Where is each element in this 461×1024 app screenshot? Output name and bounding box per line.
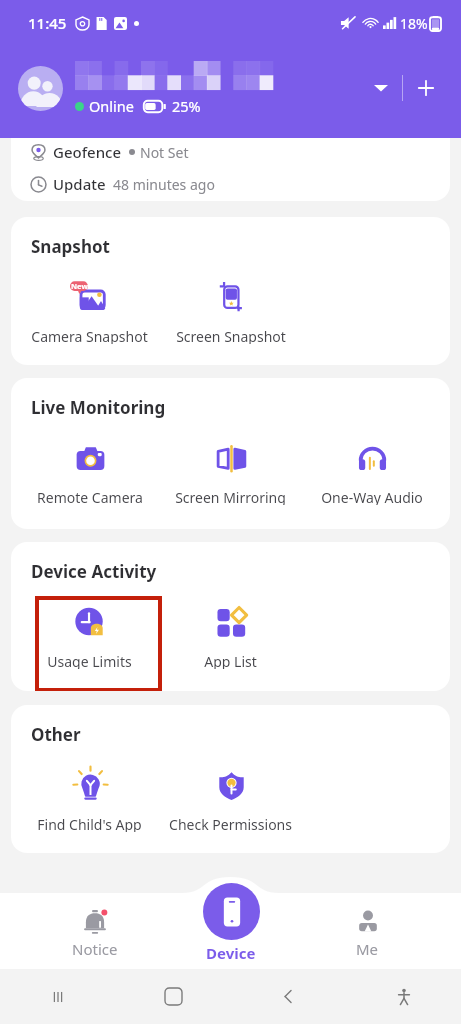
staticText: 11:45 — [28, 13, 67, 33]
staticText: Update — [53, 174, 106, 194]
button[interactable]: App List — [160, 600, 301, 672]
button[interactable]: Remote Camera — [19, 436, 160, 508]
staticText: Other — [31, 723, 81, 746]
button[interactable]: Find Child's App — [19, 763, 160, 835]
staticText: One-Way Audio — [321, 488, 423, 505]
button[interactable]: Geofence — [30, 142, 450, 162]
button[interactable]: New — [19, 275, 160, 347]
button[interactable]: Usage Limits — [19, 600, 160, 672]
staticText: Usage Limits — [47, 652, 132, 669]
staticText: Notice — [72, 939, 118, 959]
button[interactable]: Device — [163, 893, 299, 969]
staticText: Online — [89, 96, 134, 116]
button[interactable]: Add device — [409, 71, 443, 105]
staticText: New — [71, 281, 88, 291]
button[interactable]: One-Way Audio — [301, 436, 442, 508]
staticText: App List — [204, 652, 257, 669]
staticText: Device Activity — [31, 560, 157, 583]
button[interactable]: Screen Mirroring — [160, 436, 301, 508]
button[interactable]: Check Permissions — [160, 763, 301, 835]
button[interactable]: Switch device — [364, 71, 398, 105]
button[interactable]: Screen Snapshot — [160, 275, 301, 347]
staticText: Not Set — [140, 143, 189, 162]
button[interactable]: Notice — [26, 893, 163, 959]
staticText: 48 minutes ago — [113, 175, 215, 194]
staticText: 18% — [400, 14, 428, 33]
button[interactable]: Profile — [18, 66, 63, 111]
staticText: Snapshot — [31, 235, 110, 258]
staticText: Geofence — [53, 142, 122, 162]
button[interactable]: Update — [30, 174, 450, 194]
staticText: 25% — [172, 96, 201, 116]
staticText: Check Permissions — [169, 815, 292, 832]
staticText: Camera Snapshot — [31, 327, 148, 344]
staticText: Live Monitoring — [31, 396, 166, 419]
staticText: Screen Mirroring — [175, 488, 286, 505]
staticText: Screen Snapshot — [176, 327, 286, 344]
staticText: Me — [356, 939, 379, 959]
button[interactable]: Me — [299, 893, 435, 959]
staticText: Find Child's App — [37, 815, 142, 832]
staticText: Device — [206, 943, 256, 962]
staticText: Remote Camera — [37, 488, 143, 505]
